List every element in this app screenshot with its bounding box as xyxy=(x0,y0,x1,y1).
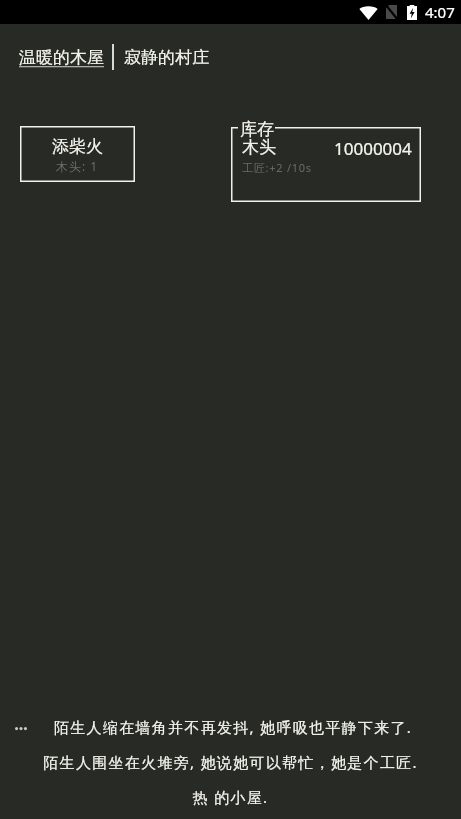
staticText: 热 的小屋. xyxy=(0,787,461,807)
staticText: 添柴火 xyxy=(52,136,103,157)
other: Battery charging xyxy=(407,5,417,20)
staticText: 陌生人围坐在火堆旁, 她说她可以帮忙，她是个工匠. xyxy=(0,752,461,772)
staticText: 木头 xyxy=(242,137,276,158)
button[interactable]: 木头 xyxy=(242,137,412,160)
staticText: 寂静的村庄 xyxy=(124,47,209,68)
other: No SIM card xyxy=(386,5,397,19)
button[interactable]: 温暖的木屋 xyxy=(19,47,104,68)
staticText: 库存 xyxy=(240,119,274,140)
button[interactable]: 寂静的村庄 xyxy=(124,47,209,68)
button[interactable]: More messages xyxy=(15,719,27,735)
staticText: 10000004 xyxy=(334,137,412,160)
staticText: 陌生人缩在墙角并不再发抖, 她呼吸也平静下来了. xyxy=(54,717,413,737)
staticText: 4:07 xyxy=(425,2,455,22)
staticText: 木头: 1 xyxy=(56,158,99,174)
other: Wi-Fi signal xyxy=(359,5,378,20)
button[interactable]: 添柴火 xyxy=(20,126,135,182)
staticText: 温暖的木屋 xyxy=(19,47,104,68)
staticText: 工匠:+2 /10s xyxy=(242,160,312,175)
